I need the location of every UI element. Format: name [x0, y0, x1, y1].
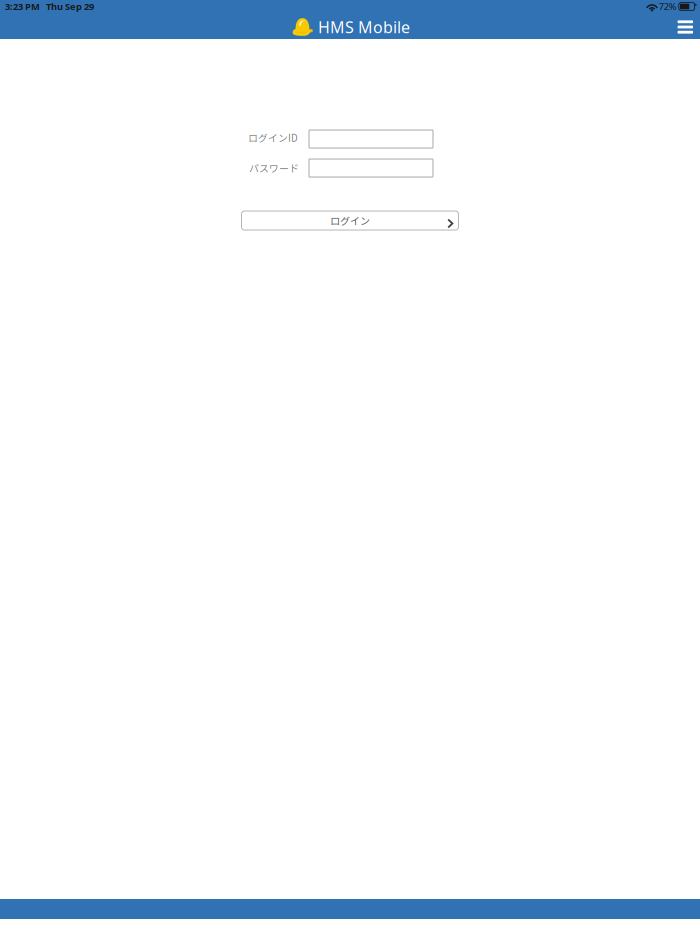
button[interactable]: ログイン: [241, 211, 458, 230]
button[interactable]: Menu: [672, 15, 699, 39]
staticText: 72%: [659, 0, 677, 13]
staticText: HMS Mobile: [318, 16, 410, 38]
staticText: Thu Sep 29: [46, 0, 94, 13]
staticText: パスワード: [249, 161, 299, 175]
staticText: 3:23 PM: [5, 0, 40, 13]
staticText: ログインID: [248, 130, 298, 145]
staticText: ログイン: [330, 213, 370, 228]
